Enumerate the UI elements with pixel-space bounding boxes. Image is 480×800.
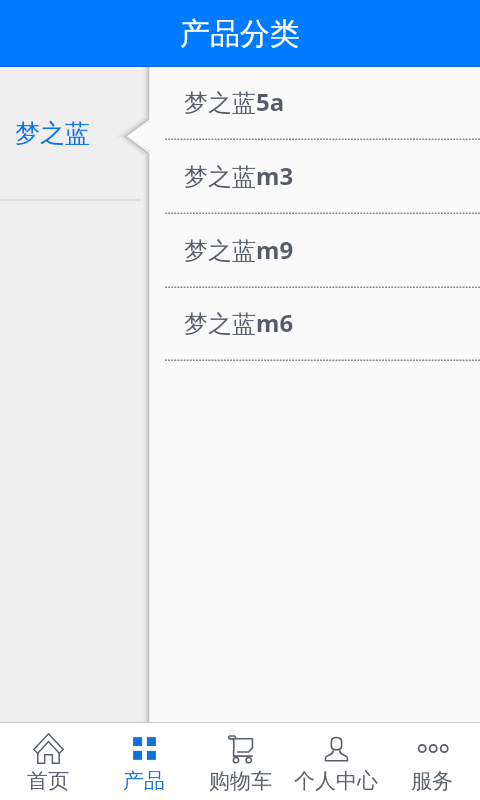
staticText: 首页 (27, 768, 69, 794)
staticText: 产品分类 (180, 15, 300, 53)
staticText: 梦之蓝 (15, 118, 90, 149)
staticText: 梦之蓝m3 (184, 159, 294, 192)
staticText: 梦之蓝5a (184, 85, 285, 118)
staticText: 个人中心 (294, 768, 378, 794)
staticText: 服务 (411, 768, 453, 794)
button[interactable]: 服务 (384, 723, 480, 800)
button[interactable]: 梦之蓝m9 (150, 215, 480, 289)
button[interactable]: 产品 (96, 723, 192, 800)
button[interactable]: 梦之蓝m3 (150, 141, 480, 215)
staticText: 购物车 (209, 768, 272, 794)
button[interactable]: 梦之蓝 (0, 67, 150, 200)
button[interactable]: 个人中心 (288, 723, 384, 800)
button[interactable]: 购物车 (192, 723, 288, 800)
button[interactable]: 梦之蓝5a (150, 67, 480, 141)
staticText: 产品 (123, 768, 165, 794)
staticText: 梦之蓝m9 (184, 233, 294, 266)
staticText: 梦之蓝m6 (184, 306, 294, 339)
button[interactable]: 首页 (0, 723, 96, 800)
button[interactable]: 梦之蓝m6 (150, 289, 480, 362)
